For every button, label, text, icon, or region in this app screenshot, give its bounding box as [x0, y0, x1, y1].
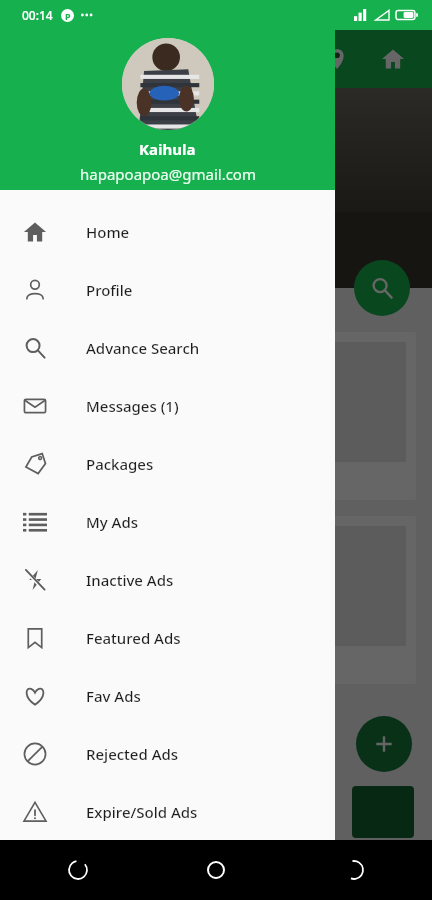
button[interactable]: Location — [320, 42, 354, 76]
button[interactable]: Inactive Ads — [0, 551, 335, 609]
staticText: Fav Ads — [86, 686, 141, 706]
button[interactable]: Back — [60, 852, 96, 888]
button[interactable]: Home — [198, 852, 234, 888]
button[interactable]: Expire/Sold Ads — [0, 783, 335, 840]
staticText: Advance Search — [86, 338, 200, 358]
button[interactable]: Add — [356, 716, 412, 772]
staticText: hapapoapoa@gmail.com — [80, 164, 256, 184]
button[interactable]: Fav Ads — [0, 667, 335, 725]
button[interactable] — [352, 786, 414, 838]
button[interactable]: Packages — [0, 435, 335, 493]
staticText: Rejected Ads — [86, 744, 179, 764]
button[interactable]: My Ads — [0, 493, 335, 551]
button[interactable]: Clothing — [16, 332, 416, 500]
button[interactable]: Clothing — [16, 516, 416, 684]
staticText: Featured Ads — [86, 628, 181, 648]
button[interactable]: Home — [0, 203, 335, 261]
staticText: Expire/Sold Ads — [86, 802, 198, 822]
staticText: Home — [86, 222, 130, 242]
staticText: 00:14 — [22, 7, 53, 23]
button[interactable]: Messages (1) — [0, 377, 335, 435]
staticText: Messages (1) — [86, 396, 179, 416]
button[interactable]: Recents — [336, 852, 372, 888]
button[interactable]: Rejected Ads — [0, 725, 335, 783]
staticText: My Ads — [86, 512, 139, 532]
button[interactable]: Home — [376, 42, 410, 76]
staticText: P — [65, 10, 71, 22]
button[interactable]: Profile — [0, 261, 335, 319]
button[interactable]: Advance Search — [0, 319, 335, 377]
staticText: Inactive Ads — [86, 570, 174, 590]
staticText: Kaihula — [139, 139, 196, 159]
button[interactable]: Search — [354, 260, 410, 316]
staticText: Packages — [86, 454, 154, 474]
staticText: Profile — [86, 280, 133, 300]
button[interactable]: Featured Ads — [0, 609, 335, 667]
